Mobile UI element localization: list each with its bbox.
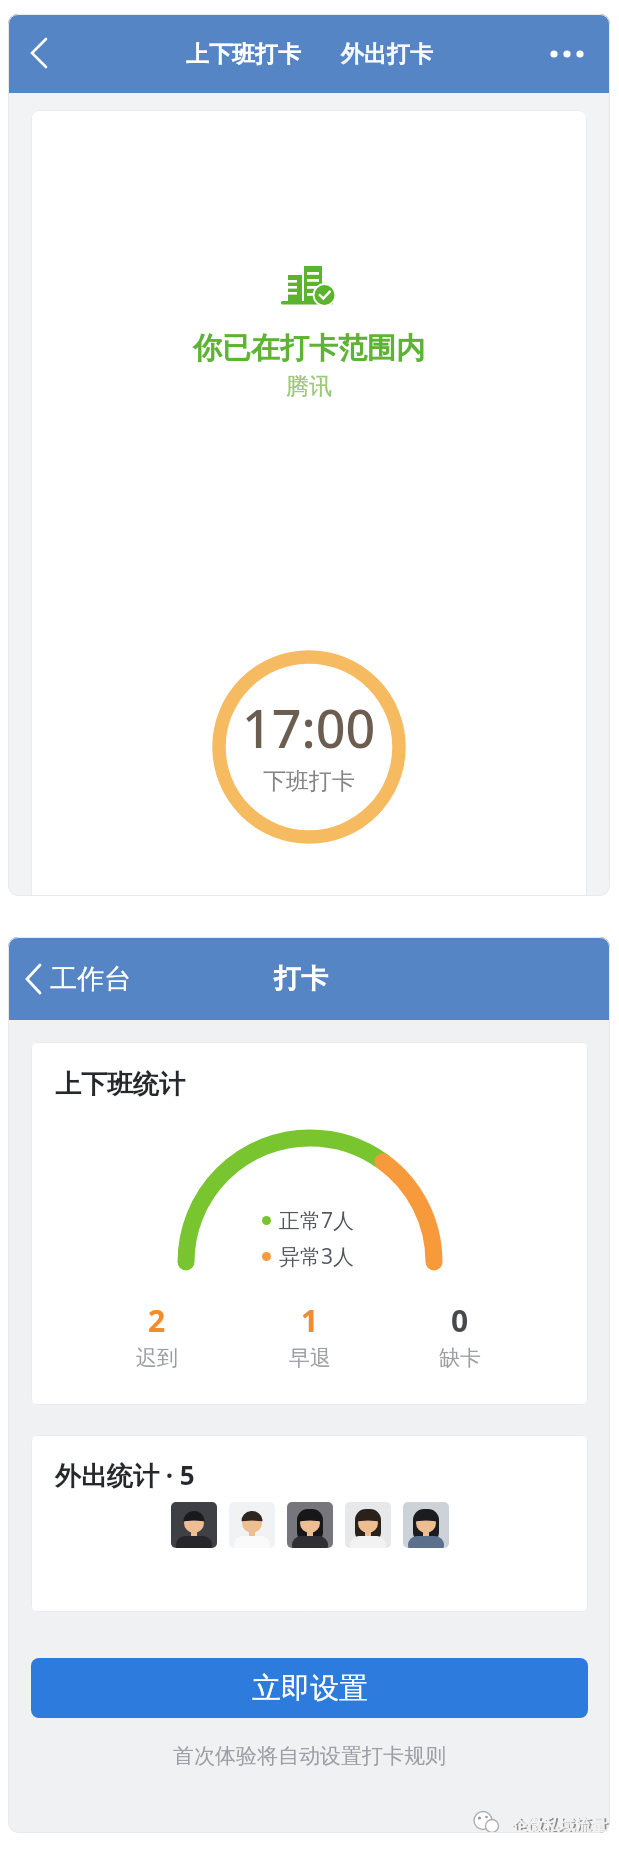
staticText: 下班打卡 (263, 767, 355, 796)
button[interactable] (229, 1502, 275, 1548)
button[interactable]: 立即设置 (31, 1658, 588, 1718)
staticText: 异常3人 (279, 1242, 355, 1271)
button[interactable] (287, 1502, 333, 1548)
button[interactable]: 外出打卡 (341, 40, 433, 69)
staticText: 缺卡 (439, 1345, 481, 1371)
button[interactable]: 17:00 (210, 648, 408, 846)
staticText: 17:00 (242, 692, 376, 763)
staticText: 企微私域流量 (511, 1816, 607, 1833)
staticText: 腾讯 (286, 372, 332, 401)
staticText: 立即设置 (252, 1670, 368, 1707)
button[interactable] (30, 39, 46, 67)
staticText: 正常7人 (279, 1206, 355, 1235)
staticText: 打卡 (274, 962, 328, 996)
staticText: 首次体验将自动设置打卡规则 (173, 1743, 446, 1769)
button[interactable]: 工作台 (25, 937, 131, 1020)
staticText: 1 (301, 1300, 319, 1341)
staticText: 工作台 (50, 962, 131, 996)
button[interactable] (403, 1502, 449, 1548)
staticText: 2 (148, 1300, 166, 1341)
staticText: 早退 (289, 1345, 331, 1371)
staticText: 外出统计 · 5 (55, 1457, 195, 1493)
button[interactable] (546, 48, 594, 60)
button[interactable] (345, 1502, 391, 1548)
staticText: 上下班统计 (55, 1068, 185, 1101)
button[interactable]: 上下班打卡 (186, 40, 301, 69)
button[interactable] (171, 1502, 217, 1548)
staticText: 你已在打卡范围内 (193, 330, 425, 367)
staticText: 企微私域流量 (513, 1817, 609, 1833)
staticText: 0 (451, 1300, 469, 1341)
staticText: 迟到 (136, 1345, 178, 1371)
